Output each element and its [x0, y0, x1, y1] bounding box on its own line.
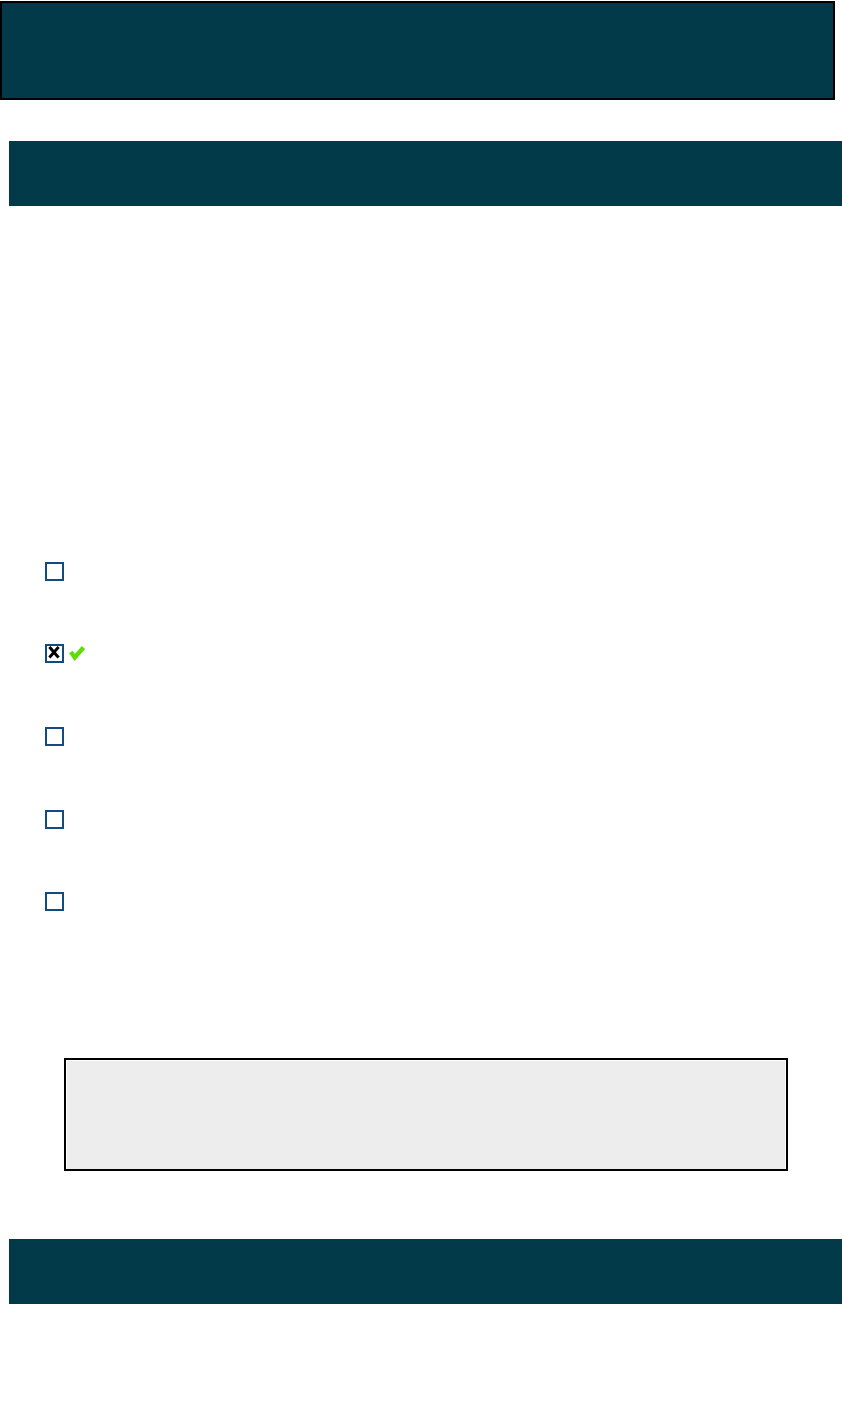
other: Correct answer [69, 645, 86, 661]
button[interactable]: Checkbox [45, 892, 64, 911]
button[interactable]: Checkbox [45, 562, 64, 581]
button[interactable]: Checkbox [45, 810, 64, 829]
button[interactable]: Checkbox selected [45, 644, 64, 663]
button[interactable] [0, 1, 835, 100]
button[interactable]: Checkbox [45, 727, 64, 746]
